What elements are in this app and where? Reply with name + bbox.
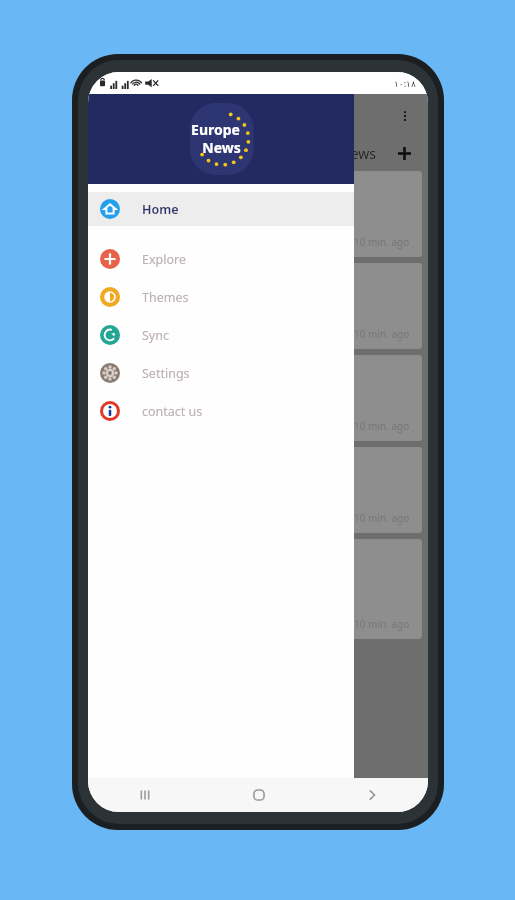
button[interactable]: Explore (88, 240, 354, 278)
staticText: Europe (191, 120, 240, 139)
staticText: ١٠:١٨ (394, 77, 416, 89)
button[interactable]: Recents (88, 778, 202, 812)
staticText: News (202, 138, 241, 157)
staticText: Themes (142, 289, 189, 306)
staticText: 10 min. ago (354, 419, 410, 433)
button[interactable]: Back (315, 778, 428, 812)
staticText: contact us (142, 403, 203, 420)
button[interactable]: Themes (88, 278, 354, 316)
staticText: New trade deal under review (104, 361, 311, 381)
staticText: Sync (142, 327, 169, 344)
button[interactable]: More options (392, 103, 418, 129)
button[interactable]: New trade deal under review (94, 355, 422, 441)
button[interactable]: Commission opens official file (94, 447, 422, 533)
staticText: News (340, 144, 376, 163)
button[interactable]: Sync (88, 316, 354, 354)
staticText: 10 min. ago (354, 511, 410, 525)
staticText: European accounts frozen (104, 269, 291, 289)
button[interactable]: Home (202, 778, 315, 812)
staticText: Explore (142, 251, 187, 268)
button[interactable]: contact us (88, 392, 354, 430)
button[interactable]: Germany warns of many risks (94, 171, 422, 257)
staticText: Home (142, 201, 179, 218)
button[interactable]: Settings (88, 354, 354, 392)
staticText: 10 min. ago (354, 235, 410, 249)
button[interactable]: European accounts frozen (94, 263, 422, 349)
staticText: Germany warns of many risks (104, 177, 318, 197)
staticText: 10 min. ago (354, 617, 410, 631)
staticText: 10 min. ago (354, 327, 410, 341)
button[interactable]: Add (394, 143, 414, 163)
button[interactable]: Home (88, 192, 354, 226)
button[interactable]: Parliament votes on energy measures in s… (94, 539, 422, 639)
staticText: Settings (142, 365, 190, 382)
